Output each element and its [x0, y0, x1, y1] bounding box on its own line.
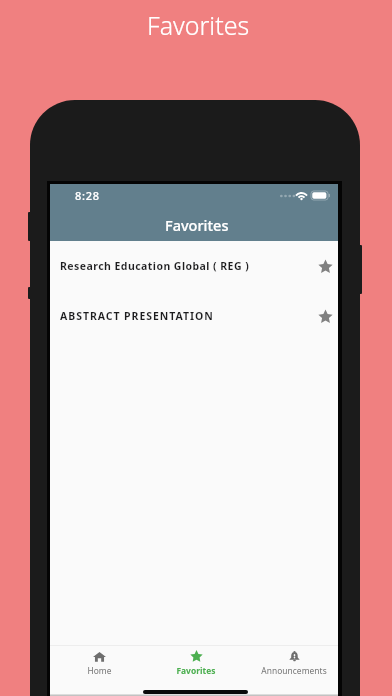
button[interactable]: Research Education Global ( REG ) [50, 241, 338, 291]
staticText: Favorites [147, 8, 250, 42]
button[interactable]: ABSTRACT PRESENTATION [50, 291, 338, 341]
staticText: Research Education Global ( REG ) [60, 259, 314, 273]
button[interactable]: Home [50, 646, 146, 680]
staticText: Announcements [261, 665, 327, 676]
staticText: Favorites [176, 665, 216, 676]
staticText: Home [87, 665, 112, 676]
button[interactable]: Unfavorite [314, 305, 336, 327]
staticText: ABSTRACT PRESENTATION [60, 309, 314, 323]
button[interactable]: Announcements [242, 646, 338, 680]
staticText: 8:28 [75, 188, 100, 203]
staticText: Favorites [165, 215, 229, 235]
button[interactable]: Favorites [146, 646, 242, 680]
button[interactable]: Unfavorite [314, 255, 336, 277]
